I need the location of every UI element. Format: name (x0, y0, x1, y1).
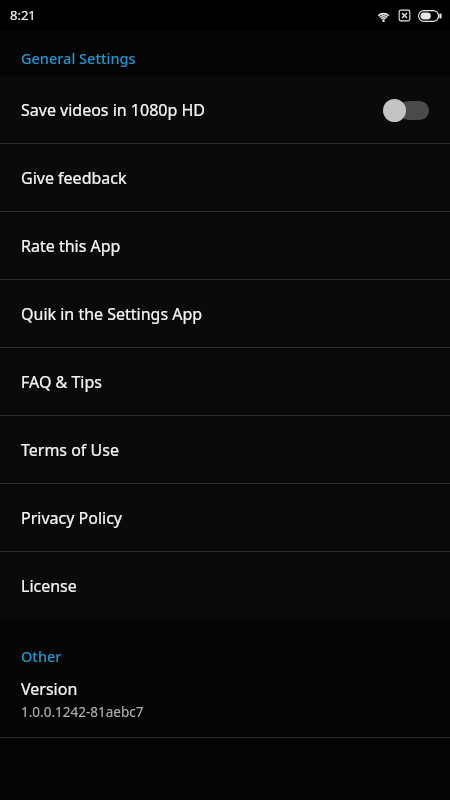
staticText: FAQ & Tips (21, 371, 102, 393)
button[interactable]: Privacy Policy (0, 484, 450, 551)
other: Save videos in 1080p HD toggle (383, 97, 429, 123)
staticText: General Settings (21, 48, 136, 68)
staticText: Quik in the Settings App (21, 303, 203, 325)
staticText: License (21, 575, 77, 597)
staticText: Other (21, 646, 62, 666)
button[interactable]: Give feedback (0, 144, 450, 211)
button[interactable]: FAQ & Tips (0, 348, 450, 415)
staticText: 8:21 (10, 6, 36, 24)
staticText: Give feedback (21, 167, 127, 189)
button[interactable]: License (0, 552, 450, 619)
staticText: Version (21, 678, 78, 700)
button[interactable]: Save videos in 1080p HD (0, 76, 450, 143)
staticText: 1.0.0.1242-81aebc7 (21, 703, 144, 721)
staticText: Privacy Policy (21, 507, 122, 529)
button[interactable]: Version (0, 676, 450, 723)
staticText: Rate this App (21, 235, 121, 257)
button[interactable]: Rate this App (0, 212, 450, 279)
button[interactable]: Terms of Use (0, 416, 450, 483)
staticText: Save videos in 1080p HD (21, 99, 383, 121)
staticText: Terms of Use (21, 439, 119, 461)
button[interactable]: Quik in the Settings App (0, 280, 450, 347)
